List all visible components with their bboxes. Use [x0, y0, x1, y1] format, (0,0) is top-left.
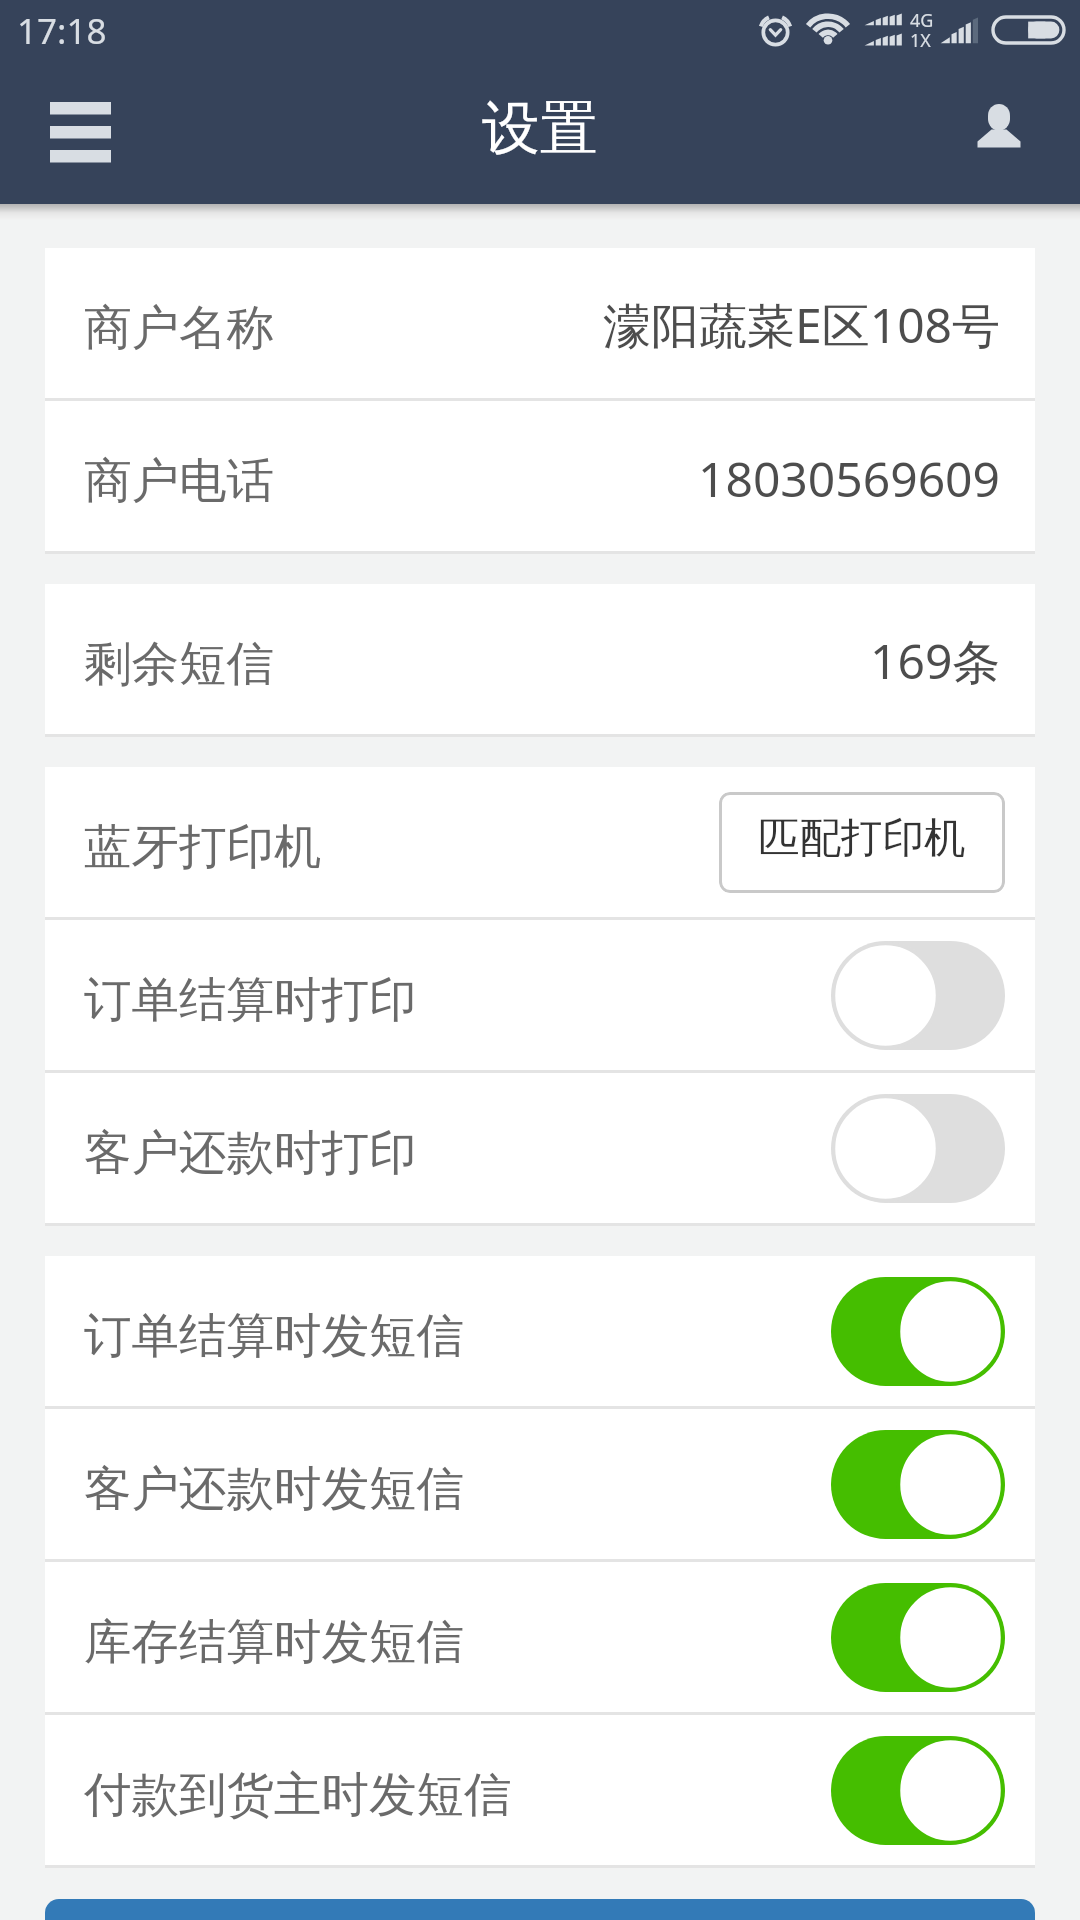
staticText: 4G	[910, 8, 934, 33]
staticText: 蓝牙打印机	[84, 817, 322, 877]
button[interactable]: Switch off	[831, 1094, 1005, 1203]
button[interactable]: 商户名称	[45, 248, 1035, 398]
staticText: 客户还款时发短信	[84, 1459, 464, 1519]
staticText: 匹配打印机	[758, 812, 966, 864]
staticText: 1X	[910, 28, 931, 53]
staticText: 18030569609	[698, 446, 1001, 511]
button[interactable]: Menu	[0, 60, 160, 204]
staticText: 17:18	[17, 7, 107, 55]
button[interactable]: Switch on	[831, 1736, 1005, 1845]
staticText: 付款到货主时发短信	[84, 1765, 512, 1825]
button[interactable]: 匹配打印机	[719, 792, 1005, 893]
staticText: 169条	[870, 628, 1001, 694]
button[interactable]: 剩余短信	[45, 584, 1035, 734]
staticText: 濛阳蔬菜E区108号	[603, 292, 1001, 358]
button[interactable]: Switch off	[831, 941, 1005, 1050]
button[interactable]: 订单结算时发短信	[45, 1256, 1035, 1406]
button[interactable]: Switch on	[831, 1430, 1005, 1539]
staticText: 商户名称	[84, 298, 274, 358]
button[interactable]: Switch on	[831, 1277, 1005, 1386]
button[interactable]: Switch on	[831, 1583, 1005, 1692]
button[interactable]: 订单结算时打印	[45, 920, 1035, 1070]
staticText: 订单结算时打印	[84, 970, 417, 1030]
button[interactable]: 库存结算时发短信	[45, 1562, 1035, 1712]
button[interactable]: 蓝牙打印机	[45, 767, 1035, 917]
staticText: 客户还款时打印	[84, 1123, 417, 1183]
button[interactable]: 商户电话	[45, 401, 1035, 551]
staticText: 设置	[482, 92, 598, 165]
button[interactable]: 保存	[45, 1899, 1035, 1920]
staticText: 库存结算时发短信	[84, 1612, 464, 1672]
staticText: 商户电话	[84, 451, 274, 511]
button[interactable]: 付款到货主时发短信	[45, 1715, 1035, 1865]
staticText: 剩余短信	[84, 634, 274, 694]
staticText: 订单结算时发短信	[84, 1306, 464, 1366]
button[interactable]: Account	[940, 60, 1080, 204]
button[interactable]: 客户还款时发短信	[45, 1409, 1035, 1559]
button[interactable]: 客户还款时打印	[45, 1073, 1035, 1223]
